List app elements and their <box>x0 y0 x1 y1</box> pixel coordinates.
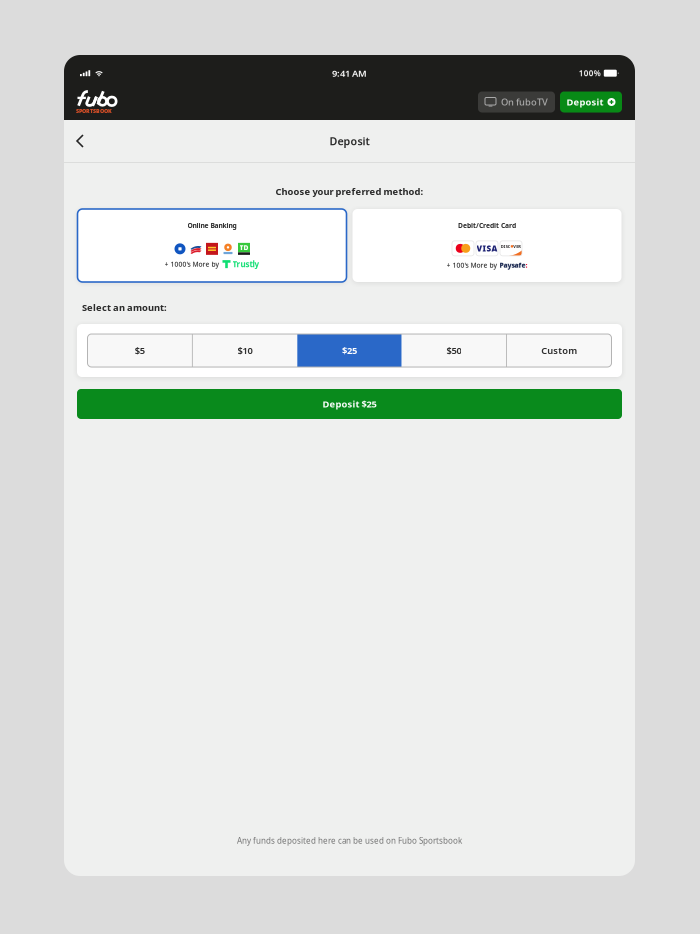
button[interactable]: Debit/Credit Card <box>352 209 621 282</box>
staticText: Deposit <box>566 96 603 108</box>
staticText: Debit/Credit Card <box>458 221 516 230</box>
staticText: 100% <box>579 68 601 78</box>
staticText: Trustly <box>232 259 259 269</box>
button[interactable]: Online Banking <box>77 209 346 282</box>
staticText: 9:41 AM <box>332 67 367 79</box>
button[interactable]: $25 <box>297 334 402 367</box>
button[interactable]: Deposit $25 <box>77 389 622 419</box>
staticText: Select an amount: <box>82 301 167 314</box>
staticText: VISA <box>476 243 497 254</box>
button[interactable]: $50 <box>402 334 506 367</box>
button[interactable]: $10 <box>193 334 297 367</box>
button[interactable]: Custom <box>507 334 611 367</box>
staticText: $10 <box>238 344 253 357</box>
staticText: $25 <box>342 344 357 357</box>
staticText: Deposit $25 <box>322 398 376 410</box>
staticText: + 1000's More by <box>164 260 219 269</box>
staticText: Online Banking <box>187 221 236 230</box>
staticText: + 100's More by <box>446 261 499 270</box>
staticText: DISC <box>501 244 511 249</box>
staticText: $50 <box>446 344 461 357</box>
staticText: Paysafe <box>499 261 525 270</box>
button[interactable]: On fuboTV <box>478 91 555 112</box>
staticText: : <box>525 261 527 270</box>
staticText: TD <box>239 243 248 252</box>
button[interactable]: $5 <box>87 334 192 367</box>
staticText: Deposit <box>329 134 369 148</box>
staticText: On fuboTV <box>501 96 548 108</box>
staticText: SPORTSBOOK <box>76 107 112 115</box>
staticText: $5 <box>135 344 145 357</box>
button[interactable]: Back <box>66 127 94 155</box>
staticText: Any funds deposited here can be used on … <box>237 835 462 846</box>
button[interactable]: Deposit <box>560 91 622 112</box>
staticText: Choose your preferred method: <box>275 185 423 198</box>
staticText: VER <box>513 244 521 249</box>
staticText: Custom <box>541 344 577 357</box>
